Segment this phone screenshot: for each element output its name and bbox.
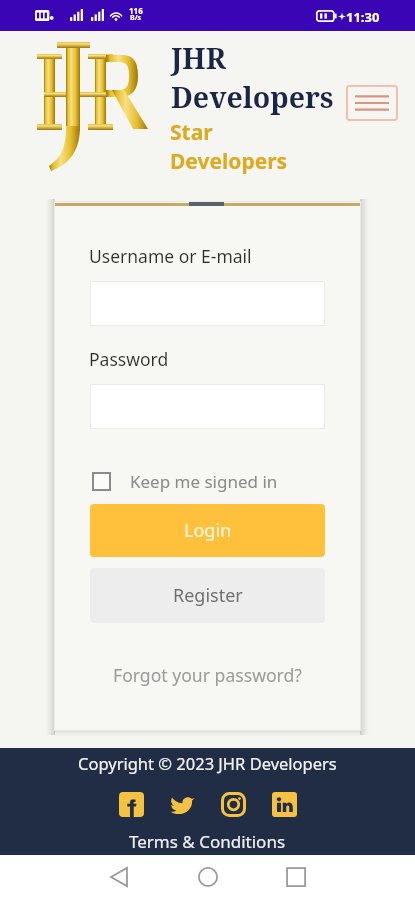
button[interactable]: Terms & Conditions (129, 830, 286, 853)
button[interactable]: Home (194, 863, 222, 891)
staticText: Password (89, 347, 169, 371)
staticText: Username or E-mail (89, 244, 252, 268)
button[interactable]: Recent apps (282, 863, 310, 891)
button[interactable]: Twitter (170, 792, 195, 817)
button[interactable]: Forgot your password? (90, 660, 325, 690)
button[interactable]: Register (90, 568, 325, 623)
button[interactable]: Open menu (346, 85, 398, 121)
button[interactable] (90, 281, 325, 326)
staticText: Copyright © 2023 JHR Developers (78, 752, 337, 774)
button[interactable]: Login (90, 504, 325, 557)
button[interactable]: Facebook (119, 792, 144, 817)
button[interactable] (90, 384, 325, 429)
staticText: Developers (171, 78, 334, 117)
staticText: B/s (130, 13, 142, 23)
staticText: Star (170, 118, 213, 147)
button[interactable]: Back (105, 863, 133, 891)
staticText: JHR (171, 39, 226, 78)
button[interactable]: Instagram (221, 792, 246, 817)
staticText: 11:30 (346, 8, 380, 26)
staticText: Developers (170, 147, 288, 176)
staticText: Keep me signed in (130, 470, 278, 493)
staticText: 116 (129, 5, 143, 16)
staticText: Register (173, 583, 243, 608)
button[interactable]: LinkedIn (272, 792, 297, 817)
button[interactable]: Keep me signed in (92, 467, 302, 495)
staticText: Forgot your password? (113, 663, 302, 687)
staticText: Login (184, 518, 232, 543)
